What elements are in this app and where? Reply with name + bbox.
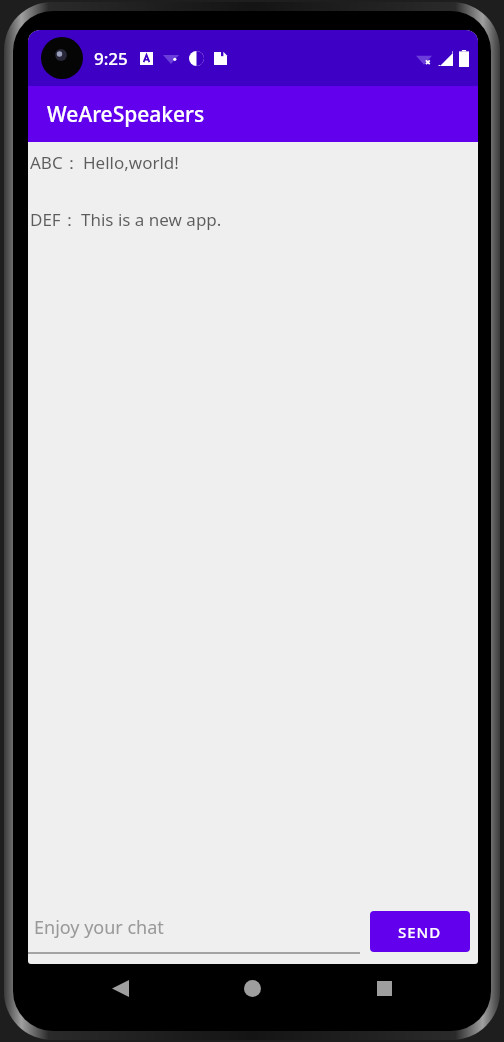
button[interactable]: ABC： xyxy=(28,149,478,176)
button[interactable]: Back xyxy=(98,966,142,1010)
button[interactable]: SEND xyxy=(370,911,470,952)
staticText: This is a new app. xyxy=(81,208,222,231)
button[interactable]: Enjoy your chat xyxy=(28,908,360,954)
button[interactable]: DEF： xyxy=(28,206,478,233)
staticText: Hello,world! xyxy=(83,151,179,174)
button[interactable]: Recent apps xyxy=(362,966,406,1010)
staticText: SEND xyxy=(398,922,442,942)
staticText: DEF： xyxy=(30,208,78,231)
staticText: ABC： xyxy=(30,151,80,174)
staticText: WeAreSpeakers xyxy=(47,100,205,129)
button[interactable]: Home xyxy=(230,966,274,1010)
staticText: Enjoy your chat xyxy=(34,915,164,940)
staticText: 9:25 xyxy=(94,47,128,70)
